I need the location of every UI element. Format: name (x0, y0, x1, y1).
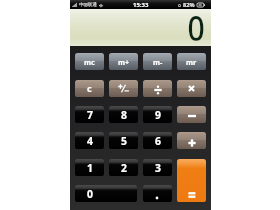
staticText: 82% (183, 1, 195, 9)
staticText: 中国联通 (79, 2, 97, 8)
button[interactable]: c (75, 80, 104, 97)
button[interactable]: mc (75, 53, 104, 70)
staticText: 0 (87, 187, 93, 201)
button[interactable]: 9 (143, 106, 172, 123)
button[interactable]: 5 (109, 132, 138, 149)
staticText: 0 (187, 4, 206, 41)
staticText: mr (186, 57, 197, 67)
staticText: 9 (155, 108, 161, 122)
button[interactable]: 1 (75, 159, 104, 176)
staticText: 3 (155, 161, 161, 175)
button[interactable]: mr (177, 53, 206, 70)
staticText: m- (153, 57, 163, 67)
button[interactable]: Equals (177, 159, 206, 202)
staticText: m+ (118, 57, 130, 67)
button[interactable]: m- (143, 53, 172, 70)
staticText: 2 (121, 161, 127, 175)
button[interactable]: Plus (177, 132, 206, 149)
button[interactable]: 7 (75, 106, 104, 123)
button[interactable]: Minus (177, 106, 206, 123)
staticText: 6 (155, 134, 161, 148)
button[interactable]: 4 (75, 132, 104, 149)
button[interactable]: 8 (109, 106, 138, 123)
staticText: c (87, 82, 92, 94)
staticText: 7 (87, 108, 93, 122)
button[interactable]: Zero (75, 185, 137, 202)
button[interactable]: Plus minus (109, 80, 138, 97)
button[interactable]: 3 (143, 159, 172, 176)
staticText: 5 (121, 134, 127, 148)
button[interactable]: m+ (109, 53, 138, 70)
staticText: 1 (87, 161, 93, 175)
button[interactable]: 2 (109, 159, 138, 176)
staticText: mc (84, 57, 95, 67)
button[interactable]: Divide (143, 80, 172, 97)
button[interactable]: Multiply (177, 80, 206, 97)
button[interactable]: 6 (143, 132, 172, 149)
staticText: 4 (87, 134, 93, 148)
button[interactable]: Decimal point (143, 185, 172, 202)
staticText: 15:33 (133, 1, 149, 9)
staticText: 8 (121, 108, 127, 122)
